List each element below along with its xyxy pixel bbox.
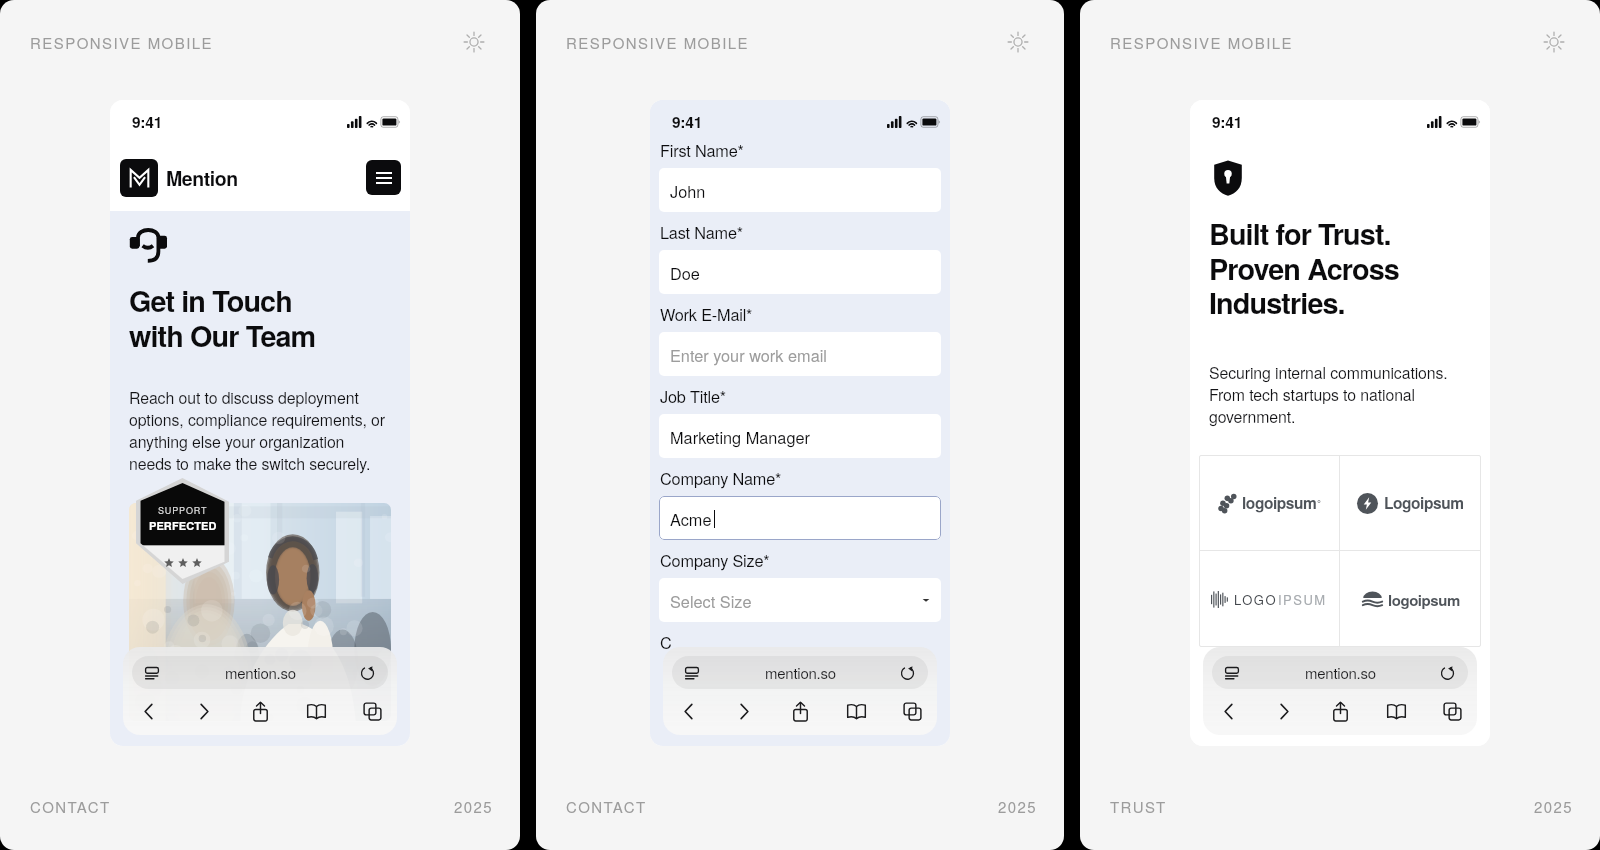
button[interactable]: Page settings xyxy=(672,656,928,689)
button[interactable]: Tabs xyxy=(1435,694,1469,728)
button[interactable]: Select Size xyxy=(659,578,941,622)
button[interactable]: Bookmarks xyxy=(839,694,873,728)
button[interactable]: Bookmarks xyxy=(1379,694,1413,728)
button[interactable]: Share xyxy=(1323,694,1357,728)
button[interactable]: Doe xyxy=(659,250,941,294)
staticText: RESPONSIVE MOBILE xyxy=(566,32,750,53)
staticText: mention.so xyxy=(1305,662,1376,683)
staticText: Doe xyxy=(670,261,700,284)
staticText: Marketing Manager xyxy=(670,425,810,448)
staticText: John xyxy=(670,179,706,202)
staticText: RESPONSIVE MOBILE xyxy=(1110,32,1294,53)
button[interactable]: logoipsum xyxy=(1340,551,1481,647)
button[interactable]: Bookmarks xyxy=(299,694,333,728)
button[interactable]: Share xyxy=(783,694,817,728)
staticText: 9:41 xyxy=(672,111,703,133)
button[interactable]: Menu xyxy=(366,160,401,195)
staticText: 2025 xyxy=(998,796,1038,817)
staticText: LOGO xyxy=(1234,590,1278,609)
staticText: Company Size* xyxy=(660,548,770,571)
button[interactable]: Page settings xyxy=(1212,656,1468,689)
button[interactable]: Tabs xyxy=(895,694,929,728)
staticText: Built for Trust. Proven Across Industrie… xyxy=(1209,213,1399,322)
staticText: 2025 xyxy=(454,796,494,817)
staticText: Mention xyxy=(166,164,238,192)
button[interactable]: Reload xyxy=(900,665,915,680)
staticText: 2025 xyxy=(1534,796,1574,817)
staticText: 9:41 xyxy=(132,111,163,133)
staticText: Phone Number xyxy=(660,733,770,740)
button[interactable]: Toggle theme xyxy=(1002,26,1034,58)
staticText: SUPPORT xyxy=(158,504,208,517)
staticText: First Name* xyxy=(660,138,744,161)
staticText: Get in Touch with Our Team xyxy=(129,280,316,355)
staticText: Job Title* xyxy=(660,384,726,407)
staticText: 9:41 xyxy=(1212,111,1243,133)
staticText: C xyxy=(660,630,672,653)
button[interactable]: Back xyxy=(671,694,705,728)
button[interactable]: Page settings xyxy=(144,665,160,681)
staticText: RESPONSIVE MOBILE xyxy=(30,32,214,53)
staticText: Last Name* xyxy=(660,220,743,243)
button[interactable]: Enter your work email xyxy=(659,332,941,376)
staticText: Reach out to discuss deployment options,… xyxy=(129,386,385,475)
staticText: logoipsum xyxy=(1242,492,1317,514)
button[interactable]: Forward xyxy=(187,694,221,728)
button[interactable]: Toggle theme xyxy=(1538,26,1570,58)
staticText: mention.so xyxy=(765,662,836,683)
staticText: IPSUM xyxy=(1278,590,1327,609)
staticText: ° xyxy=(1317,496,1321,510)
button[interactable]: LOGO xyxy=(1199,551,1339,647)
button[interactable]: Back xyxy=(131,694,165,728)
staticText: Work E-Mail* xyxy=(660,302,753,325)
button[interactable]: Toggle theme xyxy=(458,26,490,58)
staticText: TRUST xyxy=(1110,796,1167,817)
button[interactable]: Page settings xyxy=(1224,665,1240,681)
button[interactable]: Tabs xyxy=(355,694,389,728)
button[interactable]: Reload xyxy=(1440,665,1455,680)
button[interactable]: logoipsum xyxy=(1199,455,1339,550)
staticText: Enter your work email xyxy=(670,343,827,366)
button[interactable]: Share xyxy=(243,694,277,728)
button[interactable]: Forward xyxy=(727,694,761,728)
button[interactable]: Acme xyxy=(659,496,941,540)
staticText: Select Size xyxy=(670,589,752,612)
staticText: Acme xyxy=(670,507,712,530)
staticText: logoipsum xyxy=(1388,589,1460,610)
button[interactable]: Page settings xyxy=(684,665,700,681)
staticText: CONTACT xyxy=(566,796,647,817)
button[interactable]: Forward xyxy=(1267,694,1301,728)
staticText: Logoipsum xyxy=(1384,492,1464,514)
staticText: mention.so xyxy=(225,662,296,683)
button[interactable]: Back xyxy=(1211,694,1245,728)
button[interactable]: Mention xyxy=(120,159,238,197)
staticText: CONTACT xyxy=(30,796,111,817)
staticText: Company Name* xyxy=(660,466,782,489)
button[interactable]: Logoipsum xyxy=(1340,455,1481,550)
button[interactable]: Page settings xyxy=(132,656,388,689)
staticText: Securing internal communications. From t… xyxy=(1209,361,1448,428)
button[interactable]: Marketing Manager xyxy=(659,414,941,458)
staticText: PERFECTED xyxy=(149,518,217,534)
button[interactable]: John xyxy=(659,168,941,212)
button[interactable]: Reload xyxy=(360,665,375,680)
